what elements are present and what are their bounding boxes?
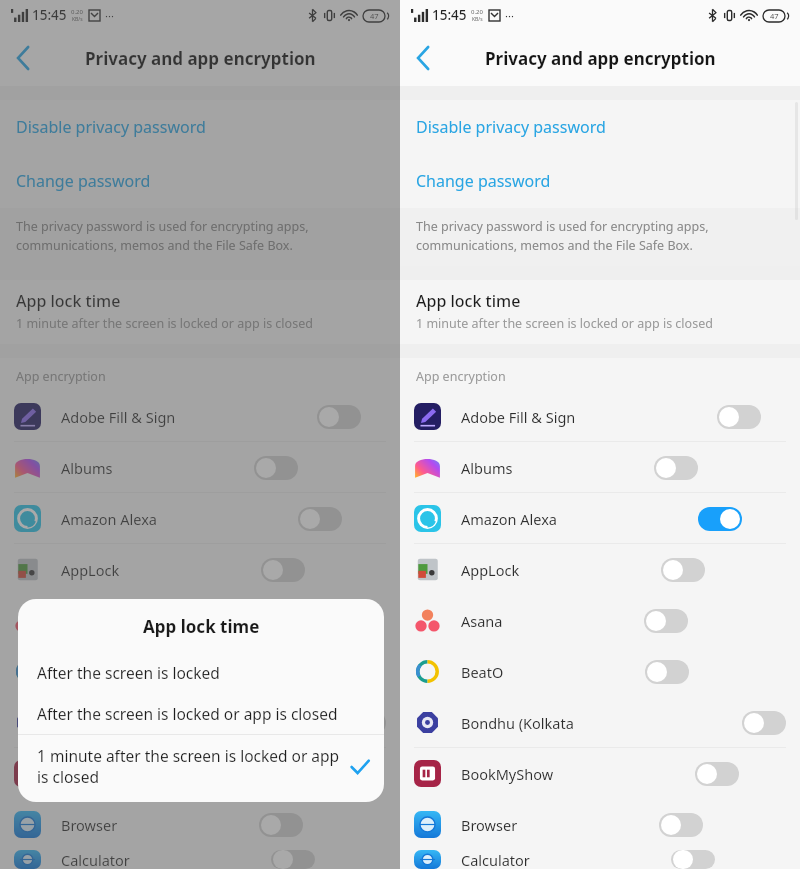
staticText: Adobe Fill & Sign — [61, 407, 176, 427]
button[interactable]: Off — [254, 456, 298, 480]
staticText: Disable privacy password — [16, 116, 206, 138]
button[interactable]: Off — [695, 762, 739, 786]
button[interactable]: Asana — [400, 595, 800, 646]
button[interactable]: Asana — [0, 595, 400, 646]
button[interactable]: Off — [645, 660, 689, 684]
button[interactable]: Off — [342, 711, 386, 735]
staticText: 15:45 — [32, 6, 67, 24]
button[interactable]: Back — [400, 35, 446, 81]
button[interactable]: BookMyShow — [0, 748, 400, 799]
staticText: BookMyShow — [461, 764, 554, 784]
button[interactable]: Off — [317, 405, 361, 429]
staticText: AppLock — [61, 560, 120, 580]
button[interactable]: On — [698, 507, 742, 531]
staticText: App encryption — [416, 368, 506, 385]
staticText: 0.20 — [71, 8, 83, 16]
staticText: Bondhu (Kolkata Police Citizen App) — [61, 713, 201, 733]
staticText: Change password — [416, 170, 551, 192]
staticText: App lock time — [143, 615, 260, 638]
staticText: Browser — [461, 815, 518, 835]
button[interactable]: Change password — [400, 154, 800, 208]
button[interactable]: Back — [0, 35, 46, 81]
staticText: After the screen is locked — [37, 662, 344, 683]
button[interactable]: AppLock — [0, 544, 400, 595]
staticText: BeatO — [461, 662, 504, 682]
staticText: ··· — [105, 8, 114, 23]
button[interactable]: Albums — [0, 442, 400, 493]
staticText: Change password — [16, 170, 151, 192]
button[interactable]: Off — [717, 405, 761, 429]
button[interactable]: Calculator — [400, 850, 800, 869]
staticText: Amazon Alexa — [461, 509, 557, 529]
staticText: ··· — [505, 8, 514, 23]
button[interactable]: After the screen is locked — [18, 652, 384, 693]
button[interactable]: 1 minute after the screen is locked or a… — [18, 735, 384, 798]
button[interactable]: Disable privacy password — [0, 100, 400, 154]
staticText: Disable privacy password — [416, 116, 606, 138]
button[interactable]: BeatO — [400, 646, 800, 697]
button[interactable]: App lock time — [400, 280, 800, 344]
button[interactable]: Amazon Alexa — [0, 493, 400, 544]
staticText: BookMyShow — [61, 764, 154, 784]
staticText: Bondhu (Kolkata Police Citizen App) — [461, 713, 601, 733]
staticText: Asana — [461, 611, 503, 631]
staticText: 15:45 — [432, 6, 467, 24]
staticText: The privacy password is used for encrypt… — [16, 218, 378, 254]
staticText: KB/s — [72, 16, 83, 23]
staticText: App encryption — [16, 368, 106, 385]
staticText: 1 minute after the screen is locked or a… — [16, 315, 313, 332]
button[interactable]: BeatO — [0, 646, 400, 697]
button[interactable]: Change password — [0, 154, 400, 208]
staticText: The privacy password is used for encrypt… — [416, 218, 778, 254]
staticText: Privacy and app encryption — [485, 47, 716, 70]
staticText: Browser — [61, 815, 118, 835]
staticText: 0.20 — [471, 8, 483, 16]
staticText: App lock time — [16, 290, 121, 312]
button[interactable]: Off — [742, 711, 786, 735]
button[interactable]: Bondhu (Kolkata Police Citizen App) — [0, 697, 400, 748]
button[interactable]: AppLock — [400, 544, 800, 595]
staticText: Calculator — [461, 850, 530, 869]
staticText: BeatO — [61, 662, 104, 682]
staticText: KB/s — [472, 16, 483, 23]
staticText: Privacy and app encryption — [85, 47, 316, 70]
staticText: Albums — [461, 458, 513, 478]
button[interactable]: Browser — [400, 799, 800, 850]
staticText: AppLock — [461, 560, 520, 580]
staticText: Albums — [61, 458, 113, 478]
button[interactable]: BookMyShow — [400, 748, 800, 799]
button[interactable]: Off — [661, 558, 705, 582]
button[interactable]: Albums — [400, 442, 800, 493]
staticText: 47 — [770, 11, 779, 21]
button[interactable]: Adobe Fill & Sign — [400, 391, 800, 442]
button[interactable]: Off — [671, 850, 715, 869]
button[interactable]: Off — [261, 558, 305, 582]
button[interactable]: Adobe Fill & Sign — [0, 391, 400, 442]
button[interactable]: After the screen is locked or app is clo… — [18, 693, 384, 734]
button[interactable]: Off — [244, 609, 288, 633]
staticText: 47 — [370, 11, 379, 21]
button[interactable]: Off — [659, 813, 703, 837]
button[interactable]: Off — [298, 507, 342, 531]
button[interactable]: Off — [259, 813, 303, 837]
button[interactable]: Off — [644, 609, 688, 633]
button[interactable]: Bondhu (Kolkata Police Citizen App) — [400, 697, 800, 748]
staticText: App lock time — [416, 290, 521, 312]
button[interactable]: App lock time — [0, 280, 400, 344]
button[interactable]: Disable privacy password — [400, 100, 800, 154]
staticText: Calculator — [61, 850, 130, 869]
button[interactable]: Amazon Alexa — [400, 493, 800, 544]
staticText: Amazon Alexa — [61, 509, 157, 529]
staticText: 1 minute after the screen is locked or a… — [416, 315, 713, 332]
staticText: Adobe Fill & Sign — [461, 407, 576, 427]
button[interactable]: Browser — [0, 799, 400, 850]
button[interactable]: Off — [654, 456, 698, 480]
button[interactable]: Calculator — [0, 850, 400, 869]
button[interactable]: Off — [271, 850, 315, 869]
staticText: After the screen is locked or app is clo… — [37, 703, 344, 724]
button[interactable]: Off — [295, 762, 339, 786]
staticText: 1 minute after the screen is locked or a… — [37, 745, 344, 788]
